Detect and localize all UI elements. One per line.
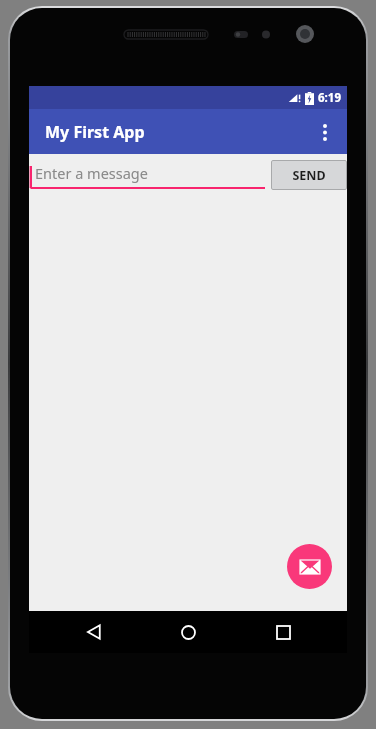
button[interactable]: More options [303, 110, 347, 154]
button[interactable]: SEND [271, 160, 347, 190]
button[interactable]: Enter a message [29, 154, 267, 195]
button[interactable]: Home [158, 611, 218, 653]
button[interactable]: Compose message [287, 544, 332, 589]
staticText: My First App [45, 121, 145, 143]
button[interactable]: Back [64, 611, 124, 653]
staticText: Enter a message [35, 163, 148, 183]
staticText: 6:19 [318, 90, 341, 106]
button[interactable]: Recent apps [253, 611, 313, 653]
staticText: SEND [292, 167, 326, 184]
